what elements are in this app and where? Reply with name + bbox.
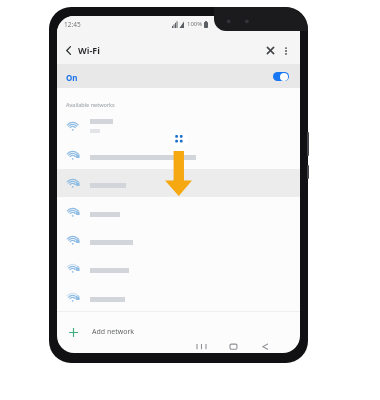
staticText: Wi-Fi <box>78 44 100 56</box>
button[interactable] <box>57 112 300 140</box>
staticText: Available networks <box>66 101 115 108</box>
staticText: On <box>66 72 78 83</box>
button[interactable]: On <box>57 64 300 88</box>
button[interactable]: Home <box>226 338 241 353</box>
other: Back <box>63 45 74 56</box>
button[interactable]: Recents <box>194 338 209 353</box>
button[interactable] <box>57 169 300 197</box>
button[interactable]: Add network <box>57 318 300 346</box>
button[interactable]: More options <box>280 45 292 57</box>
button[interactable]: Back <box>258 338 273 353</box>
staticText: Add network <box>92 327 135 337</box>
button[interactable] <box>57 283 300 311</box>
button[interactable]: Close <box>264 44 277 57</box>
button[interactable] <box>57 226 300 254</box>
button[interactable] <box>57 254 300 282</box>
button[interactable] <box>57 198 300 226</box>
button[interactable]: Back <box>63 44 100 56</box>
staticText: 100% <box>187 20 203 28</box>
button[interactable] <box>57 141 300 169</box>
staticText: 12:45 <box>64 20 81 29</box>
